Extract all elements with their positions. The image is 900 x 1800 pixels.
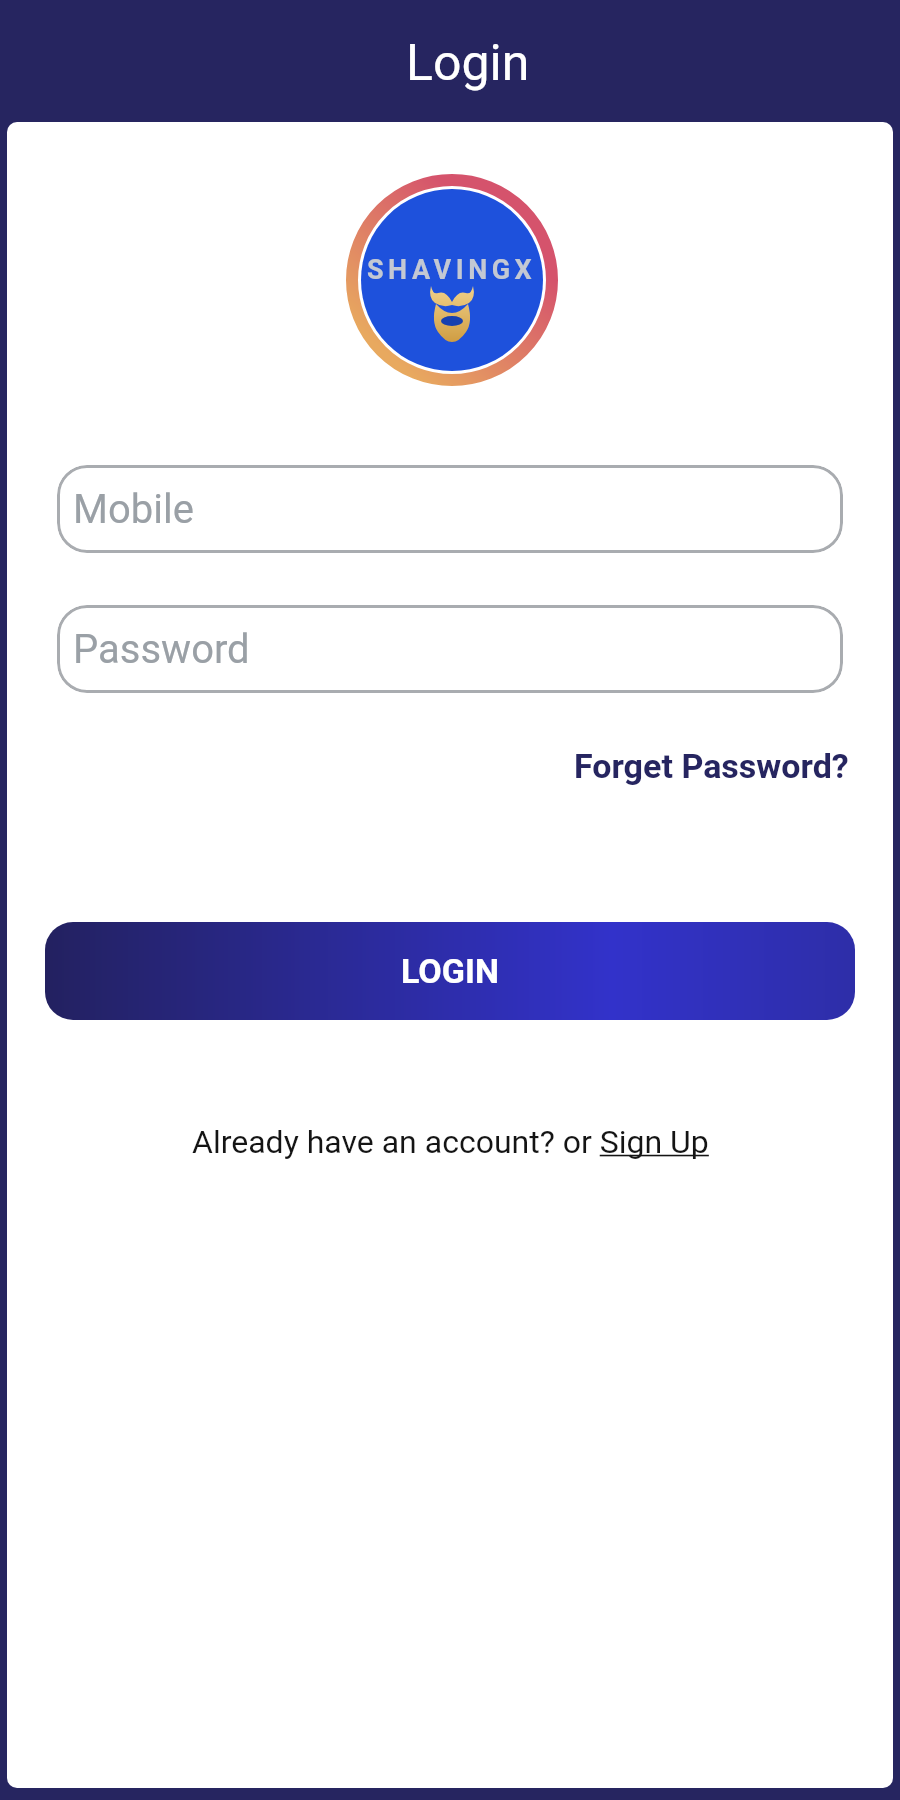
button[interactable]: LOGIN	[45, 922, 855, 1020]
staticText: Login	[406, 34, 530, 93]
staticText: Already have an account? or Sign Up	[192, 1123, 709, 1161]
staticText: SHAVINGX	[367, 254, 537, 286]
staticText: Mobile	[73, 486, 194, 533]
button[interactable]: Already have an account? or Sign Up	[7, 1123, 893, 1161]
button[interactable]: Password	[57, 605, 843, 693]
button[interactable]: Forget Password?	[574, 746, 849, 786]
button[interactable]: Mobile	[57, 465, 843, 553]
staticText: LOGIN	[401, 951, 499, 991]
staticText: Password	[73, 626, 250, 673]
